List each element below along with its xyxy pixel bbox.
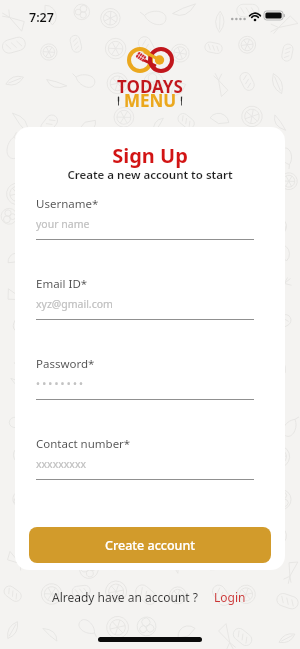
staticText: Username* bbox=[36, 196, 99, 212]
staticText: Email ID* bbox=[36, 276, 88, 292]
staticText: Contact number* bbox=[36, 436, 131, 452]
staticText: Sign Up bbox=[15, 142, 285, 169]
button[interactable]: Create account bbox=[29, 527, 271, 563]
staticText: Login bbox=[214, 589, 246, 605]
staticText: xxxxxxxxx bbox=[36, 457, 86, 471]
staticText: Create a new account to start bbox=[15, 167, 285, 183]
staticText: Already have an account ? bbox=[52, 589, 199, 605]
staticText: TODAYS bbox=[117, 75, 183, 98]
button[interactable]: Login bbox=[211, 587, 249, 607]
staticText: Password* bbox=[36, 356, 95, 372]
staticText: •••••••• bbox=[36, 377, 86, 391]
staticText: your name bbox=[36, 217, 90, 231]
staticText: xyz@gmail.com bbox=[36, 297, 113, 311]
staticText: 7:27 bbox=[29, 9, 54, 26]
staticText: Create account bbox=[105, 537, 196, 554]
staticText: MENU bbox=[124, 89, 177, 112]
